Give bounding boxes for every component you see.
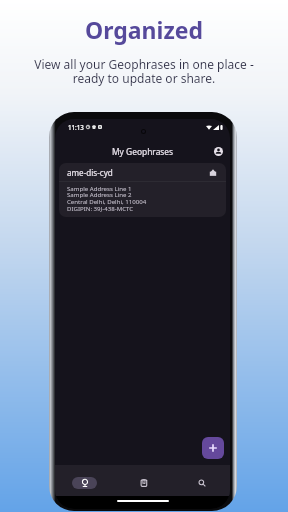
staticText: 11:13	[68, 123, 84, 131]
staticText: Sample Address Line 1 Sample Address Lin…	[67, 184, 147, 213]
button[interactable]: Add geophrase	[202, 437, 224, 459]
button[interactable]: Book	[114, 465, 172, 496]
staticText: Organized	[85, 14, 203, 45]
button[interactable]: Geophrases	[55, 465, 114, 496]
staticText: My Geophrases	[112, 146, 174, 157]
button[interactable]: ame-dis-cyd	[59, 163, 226, 217]
button[interactable]: Share	[208, 168, 217, 177]
button[interactable]: Search	[172, 465, 230, 496]
staticText: View all your Geophrases in one place - …	[34, 56, 254, 87]
button[interactable]: Account	[211, 144, 225, 158]
staticText: ame-dis-cyd	[67, 167, 113, 178]
